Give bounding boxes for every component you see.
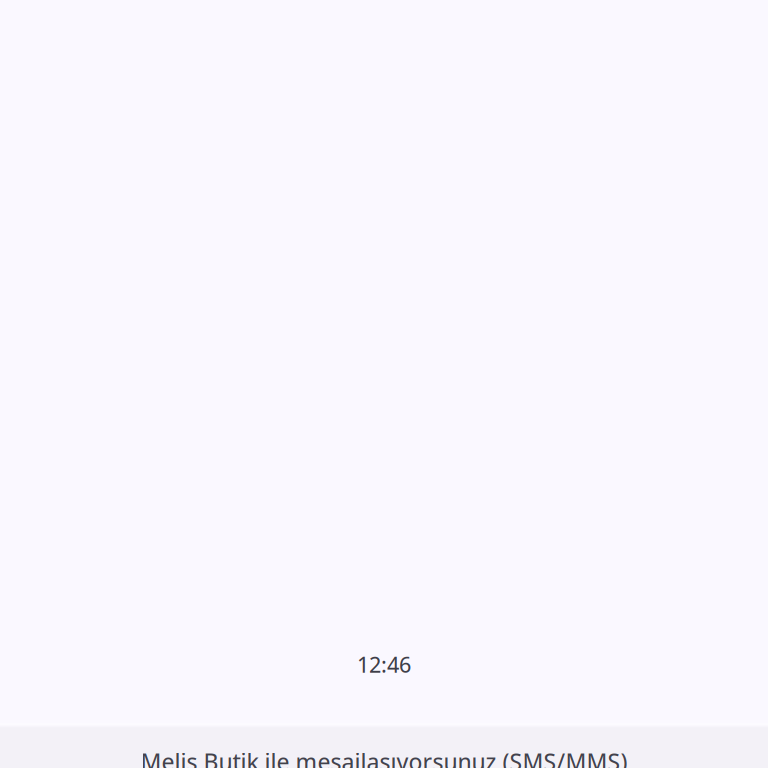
staticText: Melis Butik ile mesajlaşıyorsunuz (SMS/M…: [140, 746, 627, 768]
staticText: 12:46: [357, 650, 411, 679]
